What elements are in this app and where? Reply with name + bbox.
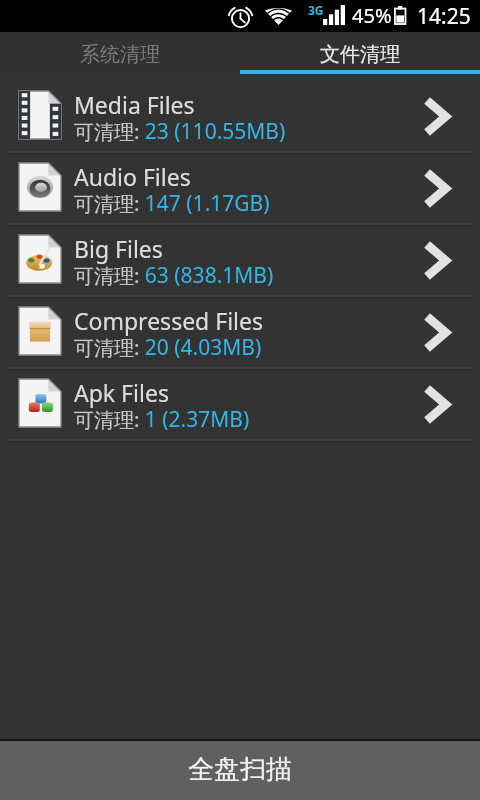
button[interactable]: 全盘扫描 [0, 741, 480, 800]
staticText: 系统清理 [80, 42, 160, 67]
button[interactable]: Audio Files [0, 153, 480, 225]
button[interactable]: 系统清理 [0, 32, 240, 70]
staticText: 可清理: 147 (1.17GB) [74, 189, 270, 218]
button[interactable]: Media Files [0, 81, 480, 153]
button[interactable]: Compressed Files [0, 297, 480, 369]
staticText: Big Files [74, 233, 163, 264]
button[interactable]: Big Files [0, 225, 480, 297]
other: Open Media Files [426, 99, 450, 134]
other: Open Audio Files [426, 171, 450, 206]
staticText: Media Files [74, 89, 195, 120]
other: Open Compressed Files [426, 315, 450, 350]
other: Wi-Fi [265, 8, 292, 25]
other: Open Apk Files [426, 387, 450, 422]
other: Battery 45 percent [393, 6, 409, 24]
staticText: 文件清理 [320, 42, 400, 67]
staticText: 全盘扫描 [188, 753, 292, 786]
staticText: 可清理: 23 (110.55MB) [74, 117, 286, 146]
other: Alarm set [230, 6, 251, 27]
staticText: Apk Files [74, 377, 169, 408]
staticText: 可清理: 1 (2.37MB) [74, 405, 250, 434]
staticText: 可清理: 63 (838.1MB) [74, 261, 274, 290]
staticText: Compressed Files [74, 305, 264, 336]
button[interactable]: Apk Files [0, 369, 480, 441]
other: Open Big Files [426, 243, 450, 278]
other: Mobile signal [323, 5, 345, 25]
staticText: Audio Files [74, 161, 191, 192]
staticText: 3G [308, 2, 324, 18]
staticText: 45% [352, 2, 392, 29]
staticText: 可清理: 20 (4.03MB) [74, 333, 262, 362]
button[interactable]: 文件清理 [240, 32, 480, 70]
staticText: 14:25 [417, 2, 471, 31]
